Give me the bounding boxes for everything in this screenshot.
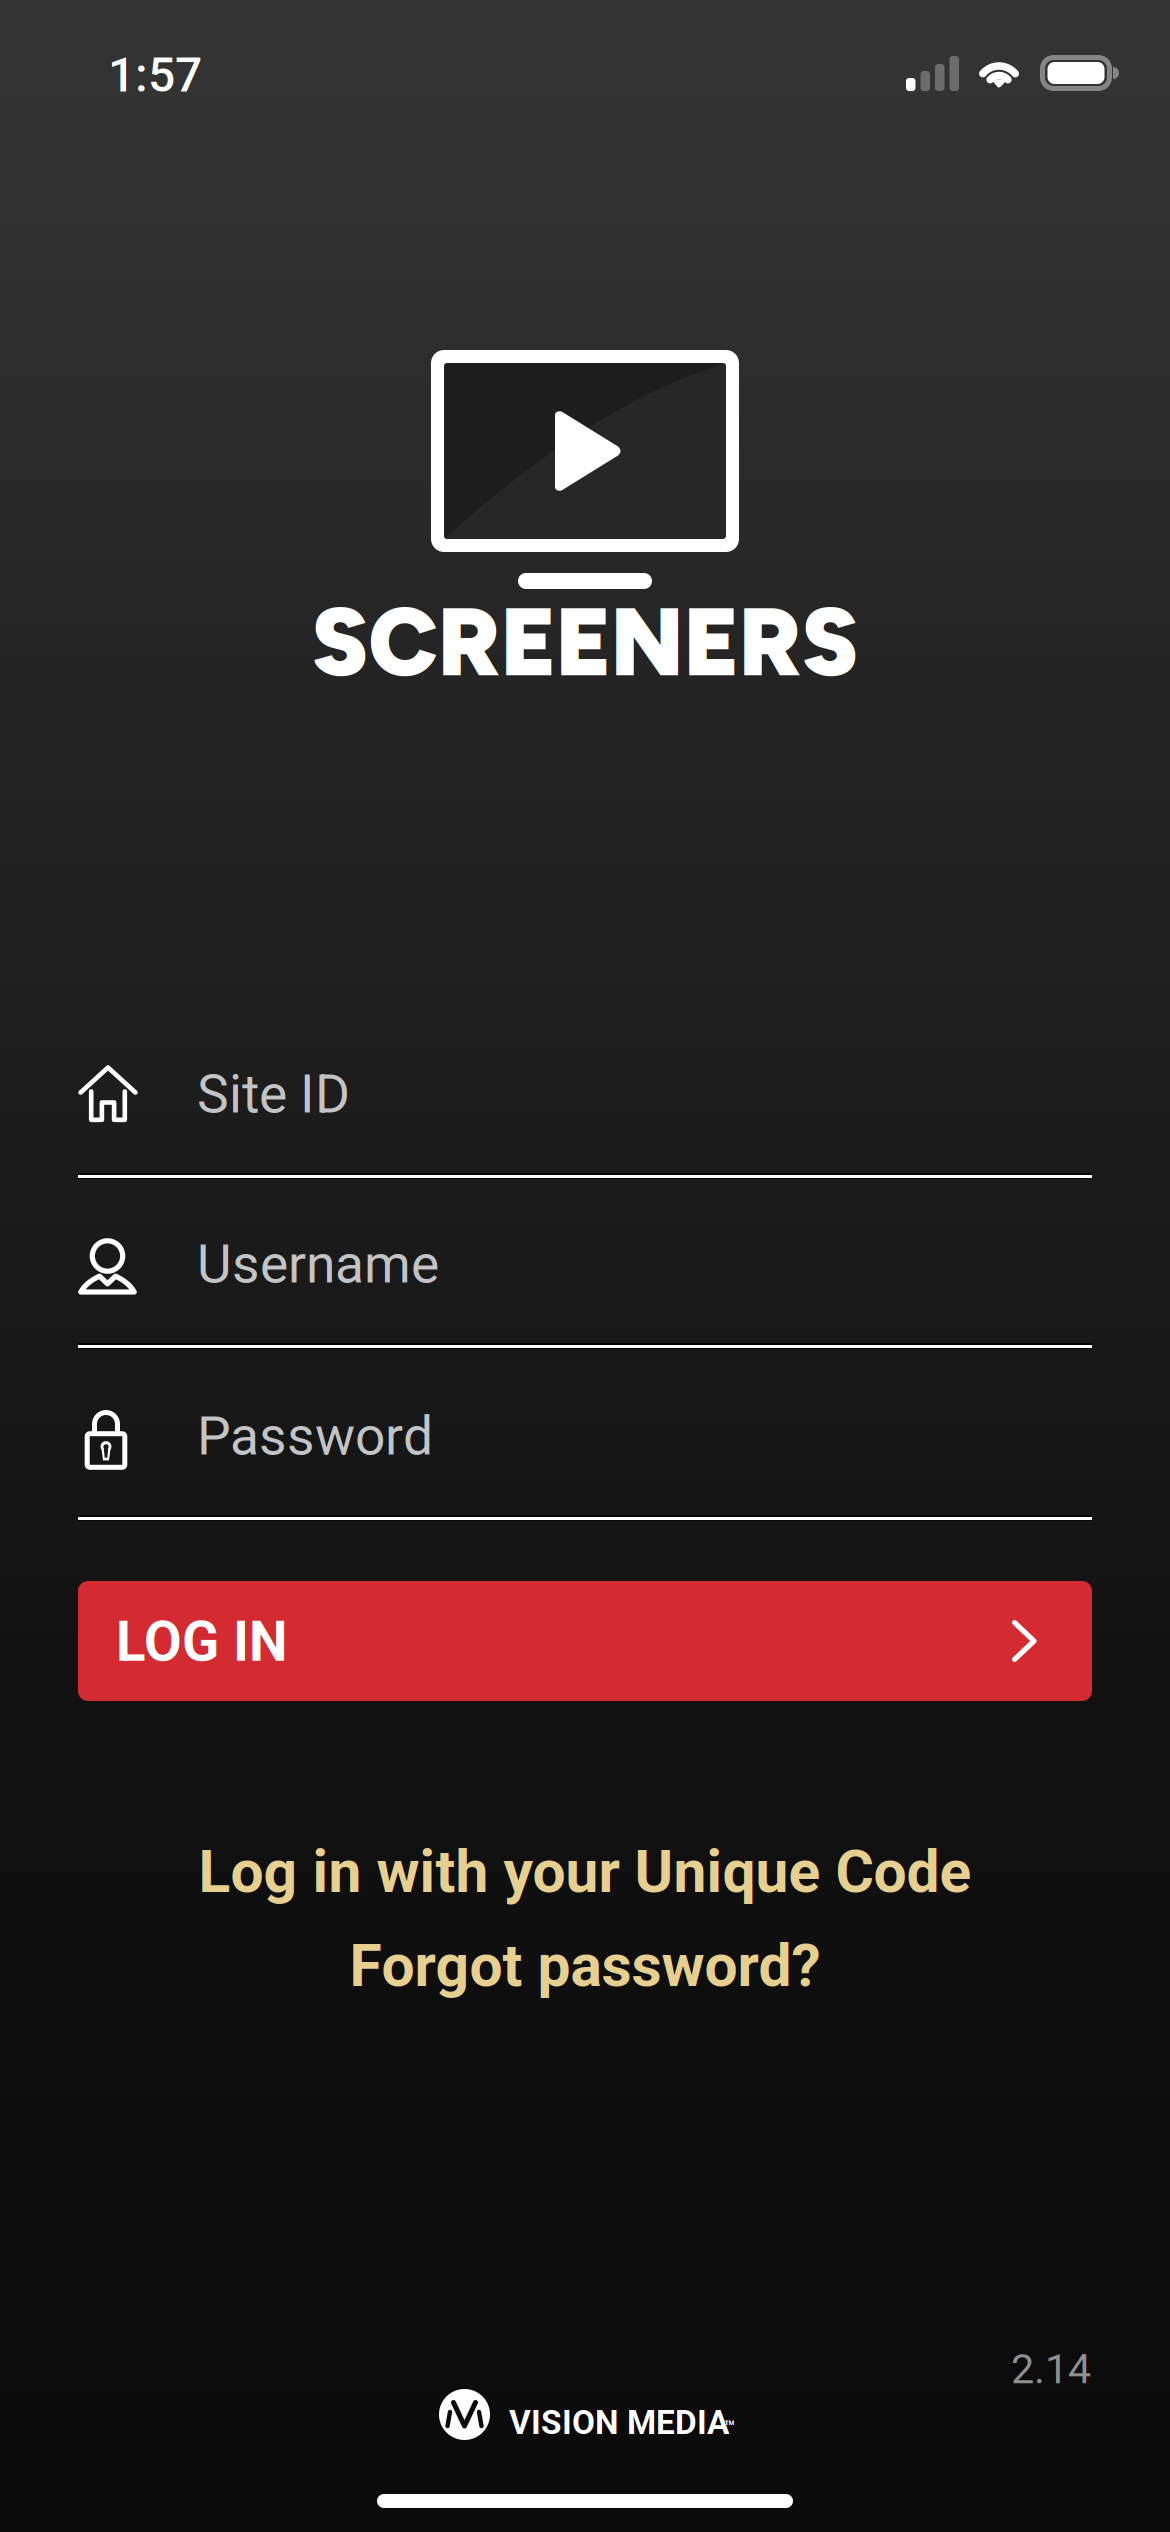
staticText: Site ID <box>197 1063 350 1125</box>
staticText: 1:57 <box>108 47 202 103</box>
staticText: Password <box>197 1405 433 1467</box>
button[interactable]: Password <box>78 1405 1092 1521</box>
staticText: VISION MEDIA <box>509 2403 729 2442</box>
button[interactable]: Forgot password? <box>78 1927 1092 2005</box>
button[interactable]: LOG IN <box>78 1581 1092 1701</box>
button[interactable]: Username <box>78 1233 1092 1349</box>
staticText: Forgot password? <box>349 1932 820 2000</box>
button[interactable]: Site ID <box>78 1063 1092 1179</box>
staticText: 2.14 <box>1011 2345 1091 2393</box>
staticText: ™ <box>724 2417 735 2437</box>
staticText: SCREENERS <box>311 585 858 699</box>
staticText: Username <box>197 1233 439 1295</box>
staticText: Log in with your Unique Code <box>198 1838 971 1906</box>
staticText: LOG IN <box>116 1610 288 1674</box>
button[interactable]: Log in with your Unique Code <box>78 1833 1092 1911</box>
